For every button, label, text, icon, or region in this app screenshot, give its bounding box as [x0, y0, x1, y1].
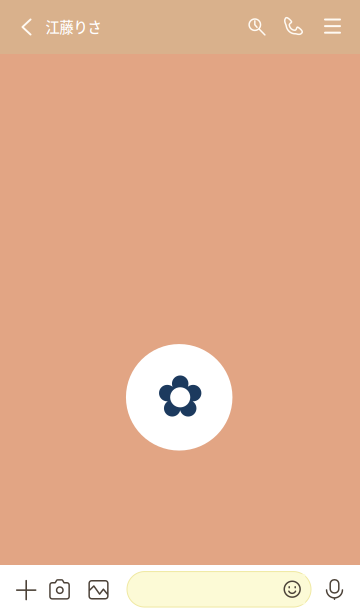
button[interactable]: 江藤りさ — [46, 16, 102, 37]
button[interactable]: Back — [8, 5, 44, 49]
button[interactable]: Stickers — [279, 574, 305, 604]
button[interactable]: More — [11, 568, 41, 612]
button[interactable]: Search in chat — [240, 5, 274, 49]
button[interactable]: Message — [127, 571, 311, 607]
button[interactable]: Call — [276, 4, 310, 48]
button[interactable]: Menu — [315, 4, 349, 48]
staticText: 江藤りさ — [46, 16, 102, 37]
button[interactable]: Camera — [43, 567, 75, 611]
button[interactable]: Voice message — [320, 572, 348, 606]
button[interactable]: Photo library — [83, 568, 113, 612]
